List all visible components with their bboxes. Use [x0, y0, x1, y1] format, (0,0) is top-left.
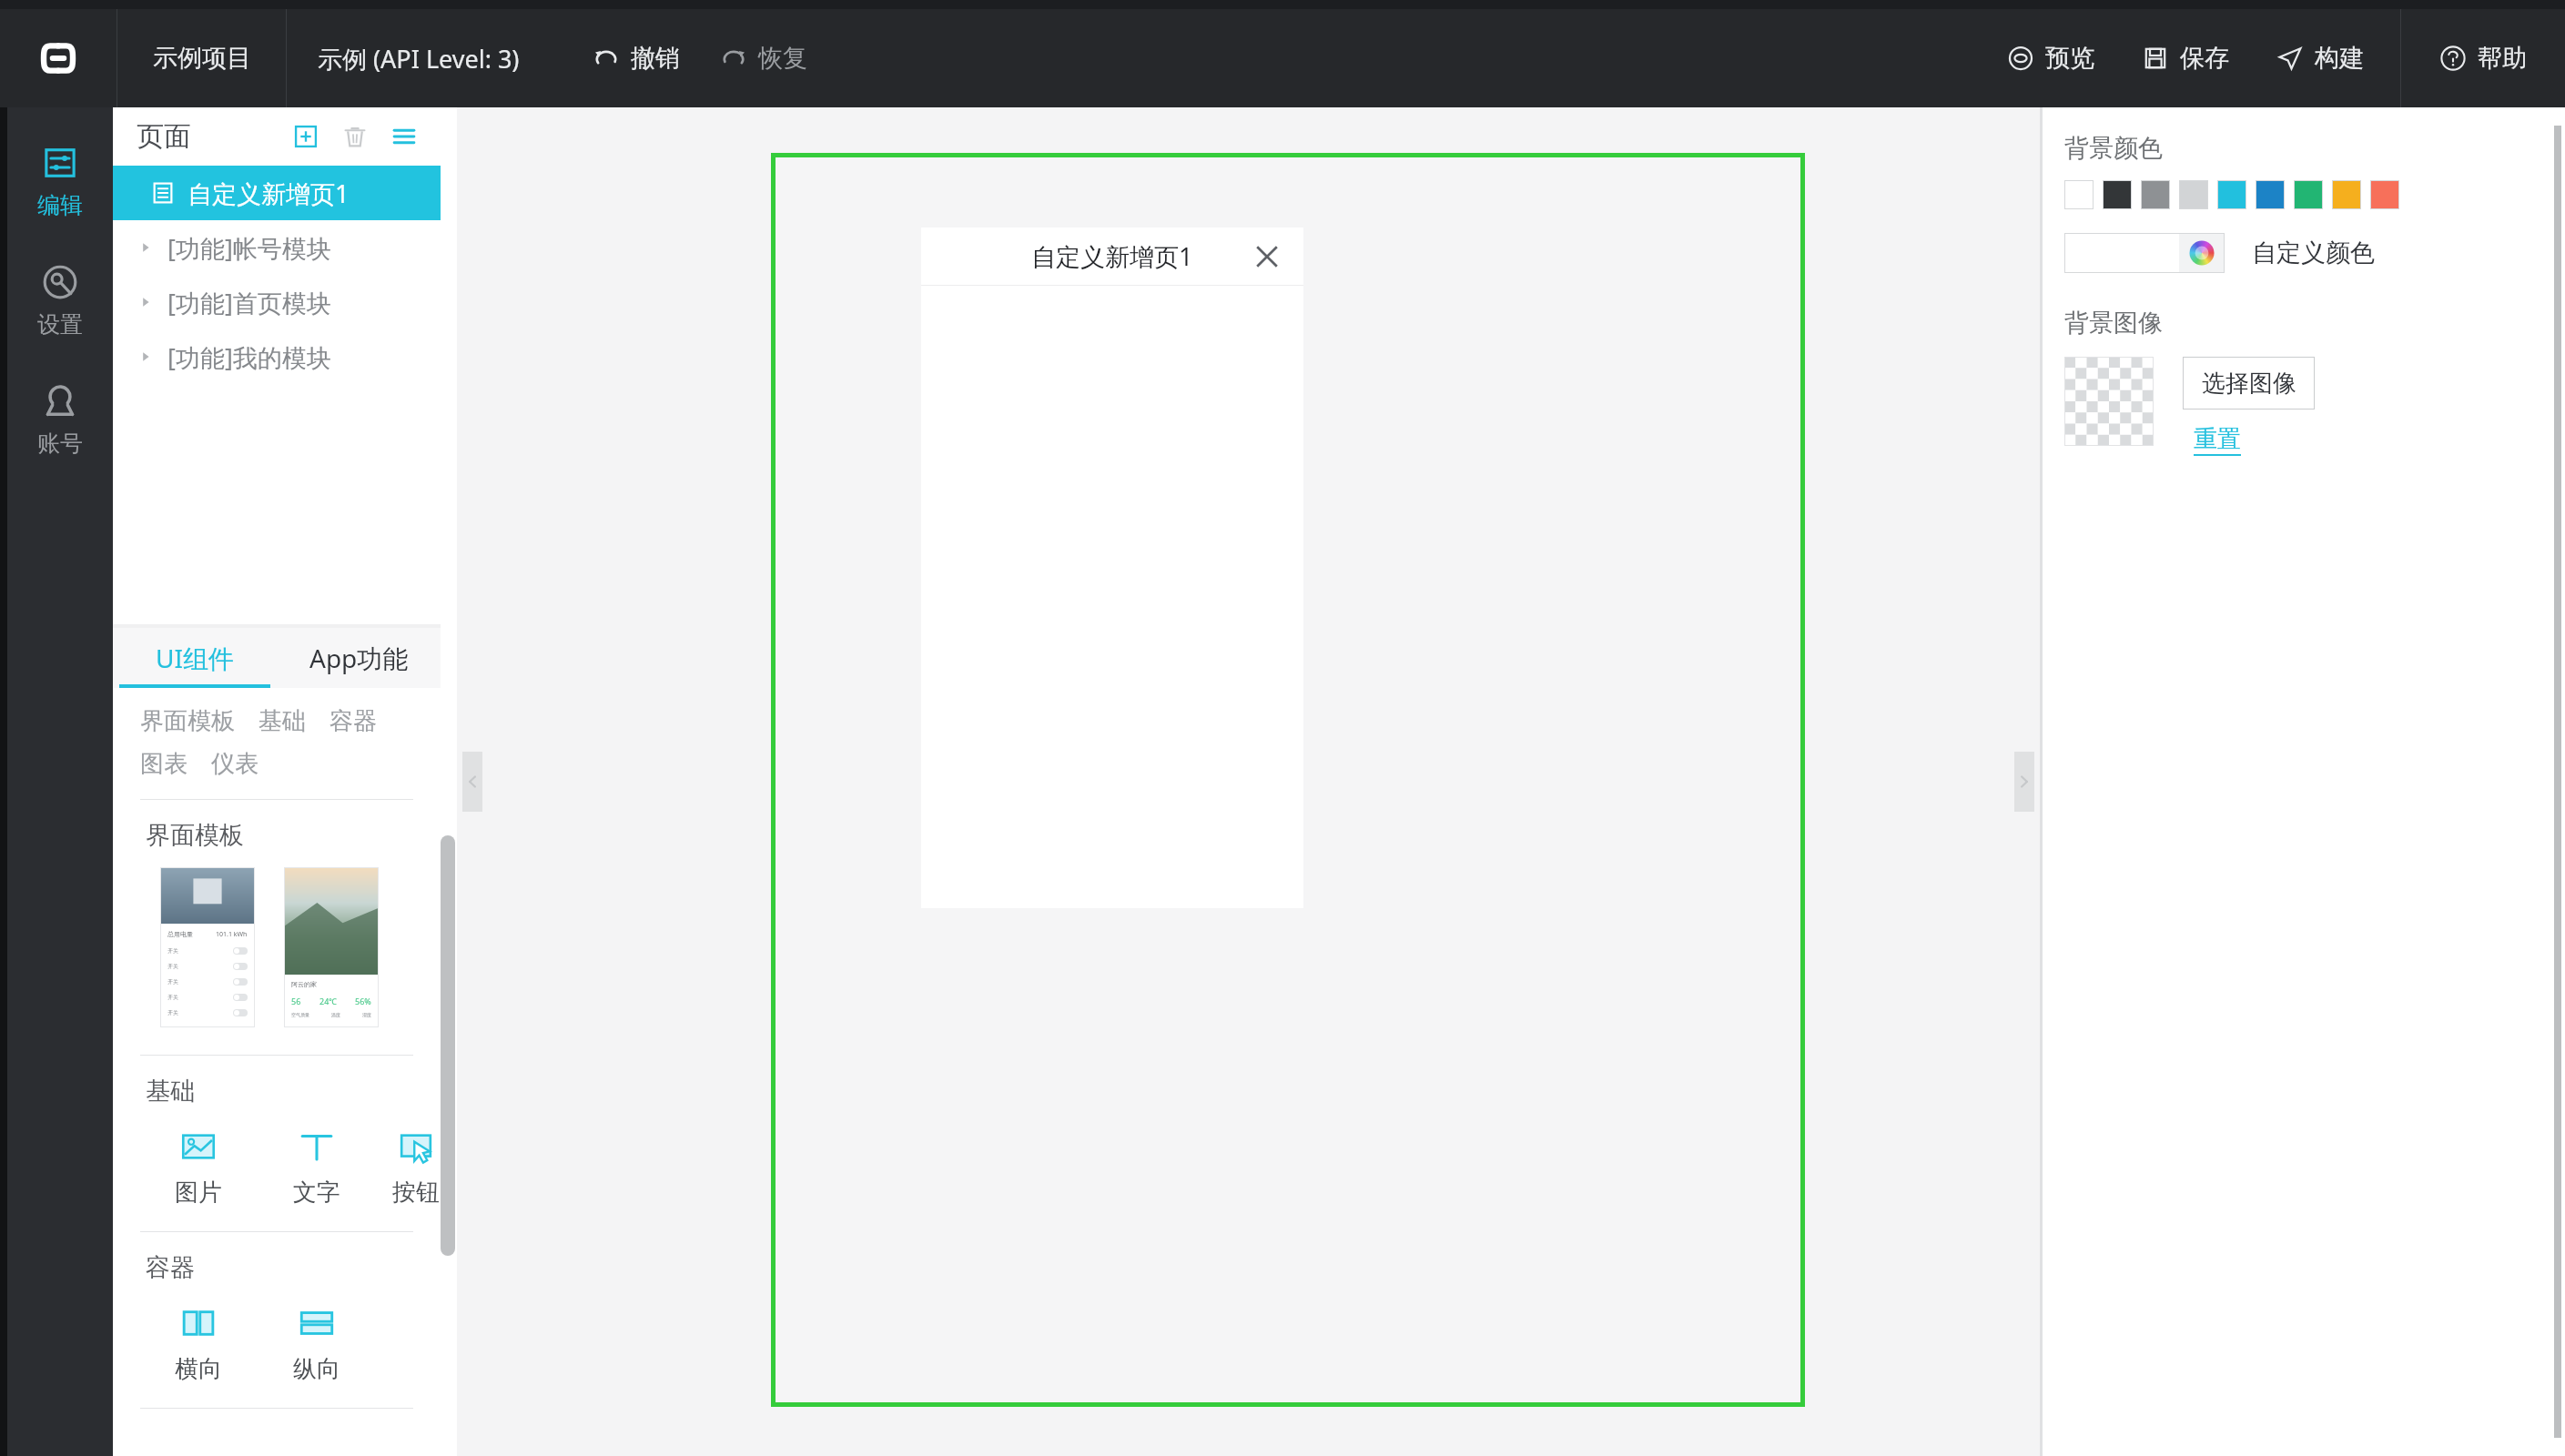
- staticText: 纵向: [293, 1354, 340, 1384]
- staticText: [功能]我的模块: [167, 340, 331, 374]
- staticText: 56%: [355, 996, 371, 1006]
- button[interactable]: 图表: [140, 749, 188, 779]
- staticText: 24℃: [319, 996, 338, 1006]
- button[interactable]: 颜色: [2370, 180, 2399, 209]
- button[interactable]: 颜色: [2141, 180, 2170, 209]
- staticText: 界面模板: [140, 706, 235, 736]
- staticText: 账号: [37, 430, 83, 458]
- staticText: 基础: [146, 1076, 195, 1107]
- button[interactable]: 颜色: [2064, 180, 2094, 209]
- staticText: 按钮: [392, 1178, 440, 1208]
- staticText: 横向: [175, 1354, 222, 1384]
- staticText: 开关: [167, 1009, 178, 1016]
- button[interactable]: [功能]帐号模块: [113, 220, 441, 275]
- button[interactable]: 预览: [2002, 9, 2100, 107]
- button[interactable]: 收起右侧面板: [2014, 752, 2034, 812]
- staticText: 撤销: [631, 43, 680, 74]
- button[interactable]: 颜色: [2103, 180, 2132, 209]
- staticText: 界面模板: [146, 820, 244, 851]
- staticText: 湿度: [362, 1012, 371, 1017]
- staticText: 开关: [167, 947, 178, 955]
- staticText: 图片: [175, 1178, 222, 1208]
- staticText: 保存: [2180, 43, 2229, 74]
- button[interactable]: 示例 (API Level: 3): [287, 9, 551, 107]
- staticText: 阿云的家: [291, 980, 317, 988]
- button[interactable]: 基础: [259, 706, 306, 736]
- button[interactable]: 账号: [7, 377, 113, 463]
- staticText: 示例项目: [153, 43, 251, 74]
- button[interactable]: 删除页面: [337, 118, 373, 155]
- button[interactable]: 总用电量: [160, 867, 255, 1027]
- button[interactable]: 自定义新增页1: [113, 166, 441, 220]
- button[interactable]: 选择图像: [2183, 357, 2315, 409]
- staticText: 56: [291, 996, 301, 1006]
- button[interactable]: 纵向: [273, 1303, 360, 1384]
- staticText: 帮助: [2478, 43, 2527, 74]
- staticText: 示例 (API Level: 3): [318, 42, 520, 76]
- button[interactable]: 恢复: [715, 9, 813, 107]
- button[interactable]: 帮助: [2401, 9, 2565, 107]
- button[interactable]: 构建: [2271, 9, 2369, 107]
- staticText: 背景颜色: [2064, 133, 2163, 164]
- button[interactable]: 文字: [273, 1127, 360, 1208]
- staticText: 页面: [137, 119, 191, 154]
- button[interactable]: 按钮: [391, 1127, 441, 1208]
- staticText: 自定义新增页1: [188, 177, 350, 210]
- staticText: App功能: [309, 641, 409, 675]
- staticText: UI组件: [156, 641, 234, 675]
- button[interactable]: 界面模板: [140, 706, 235, 736]
- staticText: 开关: [167, 978, 178, 986]
- staticText: 开关: [167, 994, 178, 1001]
- staticText: 图表: [140, 749, 188, 779]
- staticText: 构建: [2315, 43, 2364, 74]
- staticText: 仪表: [211, 749, 259, 779]
- staticText: 101.1 kWh: [216, 930, 248, 939]
- staticText: 容器: [329, 706, 377, 736]
- button[interactable]: App功能: [277, 628, 441, 688]
- button[interactable]: 编辑: [7, 138, 113, 225]
- button[interactable]: 阿云的家: [284, 867, 379, 1027]
- button[interactable]: 仪表: [211, 749, 259, 779]
- button[interactable]: 重置: [2194, 424, 2241, 456]
- button[interactable]: 颜色: [2332, 180, 2361, 209]
- button[interactable]: 新增页面: [288, 118, 324, 155]
- staticText: 恢复: [758, 43, 807, 74]
- staticText: 背景图像: [2064, 308, 2163, 339]
- button[interactable]: [功能]首页模块: [113, 275, 441, 329]
- button[interactable]: Logo: [0, 9, 117, 107]
- button[interactable]: 收起左侧面板: [462, 752, 482, 812]
- staticText: [功能]帐号模块: [167, 231, 331, 265]
- staticText: 自定义颜色: [2252, 238, 2375, 268]
- button[interactable]: UI组件: [113, 628, 277, 688]
- button[interactable]: 示例项目: [117, 9, 286, 107]
- staticText: 编辑: [37, 191, 83, 219]
- button[interactable]: 容器: [329, 706, 377, 736]
- button[interactable]: 颜色: [2256, 180, 2285, 209]
- staticText: 空气质量: [291, 1012, 309, 1017]
- button[interactable]: [2064, 233, 2225, 273]
- staticText: 自定义新增页1: [1031, 239, 1193, 273]
- staticText: 选择图像: [2202, 369, 2296, 399]
- button[interactable]: 颜色: [2294, 180, 2323, 209]
- button[interactable]: [功能]我的模块: [113, 329, 441, 384]
- button[interactable]: 撤销: [587, 9, 685, 107]
- button[interactable]: 关闭: [1247, 237, 1287, 277]
- button[interactable]: 菜单: [386, 118, 422, 155]
- button[interactable]: 图片: [155, 1127, 242, 1208]
- button[interactable]: 横向: [155, 1303, 242, 1384]
- staticText: [功能]首页模块: [167, 286, 331, 319]
- button[interactable]: 颜色: [2179, 180, 2208, 209]
- staticText: 重置: [2194, 424, 2241, 454]
- staticText: 设置: [37, 310, 83, 339]
- staticText: 文字: [293, 1178, 340, 1208]
- staticText: 容器: [146, 1252, 195, 1283]
- button[interactable]: 颜色: [2217, 180, 2246, 209]
- staticText: 预览: [2045, 43, 2094, 74]
- staticText: 总用电量: [167, 930, 193, 938]
- button[interactable]: 保存: [2136, 9, 2235, 107]
- staticText: 开关: [167, 963, 178, 970]
- staticText: 基础: [259, 706, 306, 736]
- staticText: 温度: [331, 1012, 340, 1017]
- button[interactable]: 设置: [7, 258, 113, 344]
